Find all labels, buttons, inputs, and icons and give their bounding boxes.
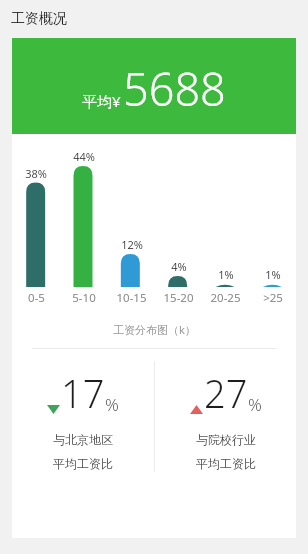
staticText: 5688 [123,58,226,119]
staticText: 工资分布图（k） [113,322,196,337]
staticText: 1% [265,267,281,282]
staticText: 10-15 [116,290,147,306]
staticText: % [248,393,262,416]
staticText: 20-25 [210,290,241,306]
button[interactable]: Decrease [12,349,154,471]
staticText: 44% [73,149,95,164]
staticText: 平均工资比 [196,456,256,471]
staticText: 0-5 [28,290,45,306]
staticText: 与北京地区 [53,432,113,447]
button[interactable]: 平均 [12,38,296,134]
staticText: % [105,393,119,416]
button[interactable]: Increase [155,349,296,471]
staticText: 平均工资比 [53,456,113,471]
staticText: 17 [61,367,105,419]
staticText: ¥ [112,91,121,111]
staticText: 工资概况 [11,10,67,28]
staticText: 27 [204,367,248,419]
staticText: >25 [263,290,283,306]
other: Decrease [47,405,60,414]
button[interactable]: 平均 [12,38,296,538]
staticText: 与院校行业 [196,432,256,447]
staticText: 12% [121,237,143,252]
other: Increase [190,405,203,414]
staticText: 15-20 [163,290,194,306]
staticText: 平均 [82,93,112,112]
staticText: 38% [25,166,47,181]
staticText: 4% [171,259,187,274]
staticText: 1% [218,267,234,282]
staticText: 5-10 [72,290,96,306]
